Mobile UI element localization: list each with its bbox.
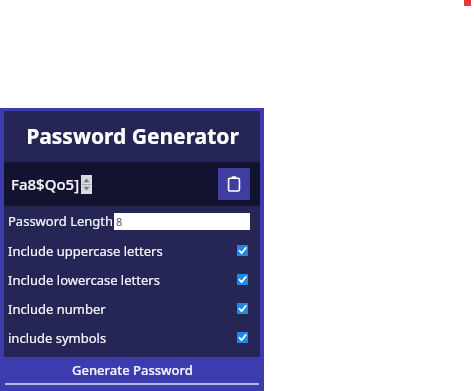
staticText: Include uppercase letters — [8, 242, 163, 260]
staticText: Fa8$Qo5] — [11, 174, 80, 194]
button[interactable]: Copy password to clipboard — [218, 168, 250, 200]
staticText: Password Length — [8, 212, 114, 230]
button[interactable]: Include lowercase letters — [4, 265, 260, 294]
staticText: Include number — [8, 300, 106, 318]
staticText: Password Generator — [26, 122, 239, 151]
staticText: Generate Password — [72, 361, 193, 379]
button[interactable]: Include uppercase letters — [4, 236, 260, 265]
button[interactable]: Stepper — [81, 175, 92, 194]
button[interactable]: include symbols — [4, 323, 260, 352]
staticText: 8 — [116, 214, 123, 229]
staticText: Include lowercase letters — [8, 271, 160, 289]
button[interactable]: Generate Password — [0, 357, 264, 383]
button[interactable]: Password Length — [4, 206, 260, 236]
staticText: include symbols — [8, 329, 107, 347]
button[interactable]: Include number — [4, 294, 260, 323]
